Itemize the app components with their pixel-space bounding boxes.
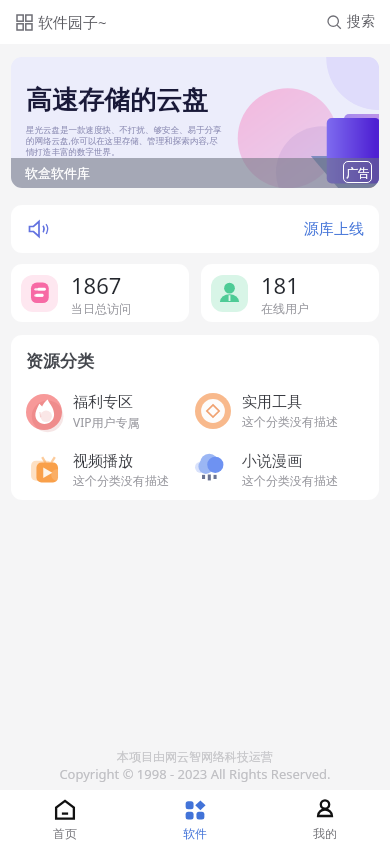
button[interactable]: 软盒软件库 (11, 57, 379, 188)
staticText: 在线用户 (261, 301, 309, 316)
staticText: 这个分类没有描述 (242, 473, 338, 488)
other: Announcement (26, 218, 48, 240)
button[interactable]: 视频播放 (26, 452, 195, 488)
button[interactable]: 软件 (130, 794, 260, 844)
button[interactable]: Menu (13, 11, 35, 33)
button[interactable]: 首页 (0, 794, 130, 844)
button[interactable]: 小说漫画 (195, 452, 364, 488)
staticText: 福利专区 (73, 393, 133, 412)
staticText: 首页 (53, 826, 77, 841)
staticText: 资源分类 (26, 351, 94, 372)
staticText: 搜索 (347, 13, 375, 31)
staticText: 这个分类没有描述 (73, 473, 169, 488)
staticText: 视频播放 (73, 452, 133, 471)
staticText: 高速存储的云盘 (26, 84, 208, 117)
button[interactable]: 1867 (11, 264, 189, 322)
staticText: 我的 (313, 826, 337, 841)
staticText: 1867 (71, 270, 122, 300)
button[interactable]: 福利专区 (26, 393, 195, 430)
button[interactable]: 搜索 (323, 9, 379, 35)
staticText: 软件 (183, 826, 207, 841)
staticText: 源库上线 (304, 220, 364, 239)
staticText: 软件园子~ (38, 12, 107, 32)
button[interactable]: 实用工具 (195, 393, 364, 429)
staticText: 本项目由网云智网络科技运营 (117, 749, 273, 764)
staticText: 小说漫画 (242, 452, 302, 471)
staticText: 这个分类没有描述 (242, 414, 338, 429)
staticText: 软盒软件库 (25, 165, 90, 181)
button[interactable]: 我的 (260, 794, 390, 844)
staticText: 实用工具 (242, 393, 302, 412)
staticText: 当日总访问 (71, 301, 131, 316)
button[interactable]: Announcement (11, 205, 379, 253)
staticText: VIP用户专属 (73, 414, 140, 430)
staticText: 星光云盘是一款速度快、不打扰、够安全、易于分享的网络云盘,你可以在这里存储、管理… (26, 125, 226, 157)
button[interactable]: 181 (201, 264, 379, 322)
staticText: 181 (261, 270, 299, 300)
staticText: 广告 (346, 165, 370, 180)
staticText: Copyright © 1998 - 2023 All Rights Reser… (59, 765, 331, 783)
